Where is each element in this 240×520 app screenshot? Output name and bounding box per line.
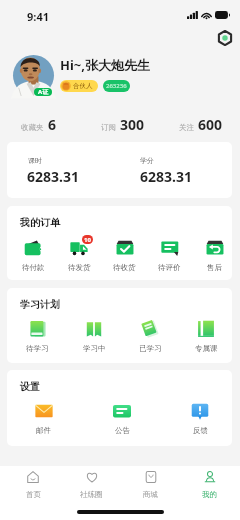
button[interactable]: 反馈 bbox=[161, 402, 232, 435]
staticText: 我的订单 bbox=[20, 216, 60, 229]
button[interactable]: 课时 bbox=[7, 142, 232, 198]
staticText: 9:41 bbox=[27, 9, 49, 24]
staticText: 专属课 bbox=[195, 344, 218, 353]
staticText: 邮件 bbox=[36, 426, 51, 435]
button[interactable]: 学习中 bbox=[66, 320, 122, 353]
button[interactable]: 邮件 bbox=[7, 402, 83, 435]
staticText: 课时 bbox=[28, 156, 42, 165]
staticText: 待付款 bbox=[22, 263, 45, 272]
staticText: 设置 bbox=[20, 380, 40, 393]
button[interactable]: 订阅 bbox=[101, 115, 145, 134]
staticText: 待收货 bbox=[113, 263, 136, 272]
button[interactable]: 待付款 bbox=[10, 239, 56, 272]
staticText: 6 bbox=[48, 115, 57, 134]
staticText: 收藏夹 bbox=[21, 123, 44, 132]
staticText: 待学习 bbox=[26, 344, 49, 353]
button[interactable]: 收藏夹 bbox=[21, 115, 57, 134]
button[interactable]: 我的 bbox=[180, 466, 239, 520]
button[interactable]: 关注 bbox=[179, 115, 223, 134]
staticText: 10 bbox=[84, 236, 91, 244]
staticText: 学习中 bbox=[83, 344, 106, 353]
staticText: 首页 bbox=[26, 490, 41, 499]
button[interactable]: 首页 bbox=[4, 466, 62, 520]
staticText: A证 bbox=[38, 88, 49, 96]
staticText: 待发货 bbox=[68, 263, 91, 272]
staticText: 6283.31 bbox=[140, 167, 192, 186]
staticText: 已学习 bbox=[139, 344, 162, 353]
button[interactable]: 待学习 bbox=[9, 320, 66, 353]
button[interactable]: 商城 bbox=[121, 466, 180, 520]
button[interactable]: Settings bbox=[217, 30, 233, 46]
staticText: 600 bbox=[198, 115, 223, 134]
button[interactable]: 合伙人 bbox=[60, 80, 98, 92]
staticText: 售后 bbox=[207, 263, 222, 272]
button[interactable]: 263236 bbox=[103, 80, 130, 92]
button[interactable]: 售后 bbox=[192, 239, 232, 272]
staticText: 合伙人 bbox=[73, 82, 93, 90]
staticText: 学分 bbox=[140, 156, 154, 165]
staticText: 6283.31 bbox=[27, 167, 79, 186]
staticText: 关注 bbox=[179, 123, 194, 132]
staticText: 反馈 bbox=[193, 426, 208, 435]
staticText: 订阅 bbox=[101, 123, 116, 132]
staticText: Hi~,张大炮先生 bbox=[60, 56, 150, 74]
staticText: 我的 bbox=[202, 490, 217, 499]
button[interactable]: 待评价 bbox=[147, 239, 192, 272]
button[interactable]: A证 bbox=[13, 55, 54, 96]
button[interactable]: 社练圈 bbox=[62, 466, 121, 520]
button[interactable]: 待收货 bbox=[102, 239, 147, 272]
button[interactable]: 公告 bbox=[83, 402, 161, 435]
staticText: 263236 bbox=[106, 82, 127, 90]
button[interactable]: 已学习 bbox=[122, 320, 178, 353]
button[interactable]: 专属课 bbox=[178, 320, 232, 353]
staticText: 社练圈 bbox=[80, 490, 103, 499]
staticText: 待评价 bbox=[158, 263, 181, 272]
staticText: 300 bbox=[120, 115, 145, 134]
staticText: 商城 bbox=[143, 490, 158, 499]
staticText: 公告 bbox=[115, 426, 130, 435]
button[interactable]: 10 bbox=[56, 239, 102, 272]
staticText: 学习计划 bbox=[20, 298, 60, 311]
